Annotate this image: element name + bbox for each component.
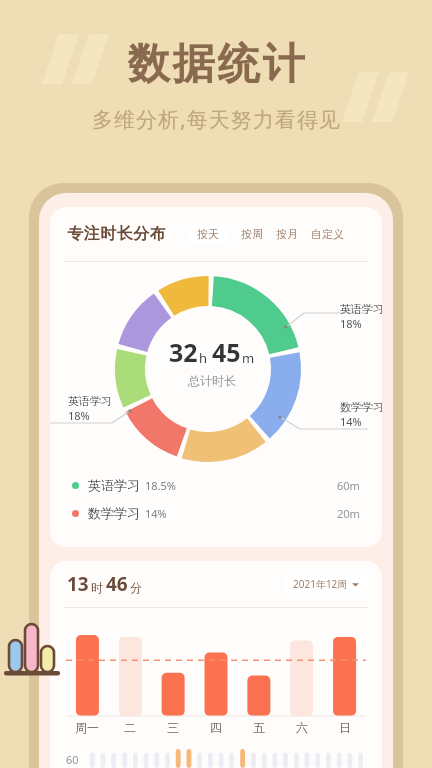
staticText: 按天 [197, 227, 219, 241]
button[interactable]: 按周 [239, 225, 265, 243]
other: Select week [352, 581, 359, 588]
staticText: 46 [106, 571, 128, 597]
staticText: 13 [67, 571, 89, 597]
button[interactable]: 2021年12周 [284, 574, 368, 594]
staticText: 32 [169, 335, 198, 369]
staticText: 数学学习 [340, 400, 382, 414]
staticText: 60 [66, 752, 79, 767]
button[interactable]: 英语学习 [50, 477, 382, 493]
staticText: 60m [337, 478, 360, 493]
button[interactable]: 按天 [188, 224, 228, 244]
staticText: h [199, 349, 208, 367]
staticText: 英语学习 [88, 477, 140, 493]
staticText: 四 [210, 720, 222, 735]
staticText: 多维分析,每天努力看得见 [92, 105, 341, 134]
button[interactable]: 按月 [274, 225, 300, 243]
staticText: 总计时长 [188, 373, 236, 388]
staticText: 2021年12周 [293, 577, 348, 591]
staticText: 专注时长分布 [67, 224, 166, 244]
staticText: 英语学习 [68, 394, 112, 408]
staticText: 14% [145, 506, 167, 521]
staticText: 分 [130, 580, 142, 595]
staticText: 日 [339, 720, 351, 735]
button[interactable]: 自定义 [309, 225, 346, 243]
staticText: 三 [167, 720, 179, 735]
staticText: 数据统计 [126, 38, 306, 91]
staticText: 周一 [75, 720, 99, 735]
staticText: 18.5% [145, 478, 176, 493]
staticText: 18% [340, 316, 382, 331]
staticText: 数学学习 [88, 505, 140, 521]
button[interactable]: 数学学习 [50, 505, 382, 521]
staticText: 45 [212, 335, 241, 369]
staticText: m [242, 349, 255, 367]
staticText: 18% [68, 408, 90, 423]
staticText: 六 [296, 720, 308, 735]
staticText: 时 [91, 580, 103, 595]
staticText: 二 [124, 720, 136, 735]
staticText: 英语学习 [340, 302, 382, 316]
staticText: 五 [253, 720, 265, 735]
staticText: 14% [340, 414, 362, 429]
staticText: 20m [337, 506, 360, 521]
